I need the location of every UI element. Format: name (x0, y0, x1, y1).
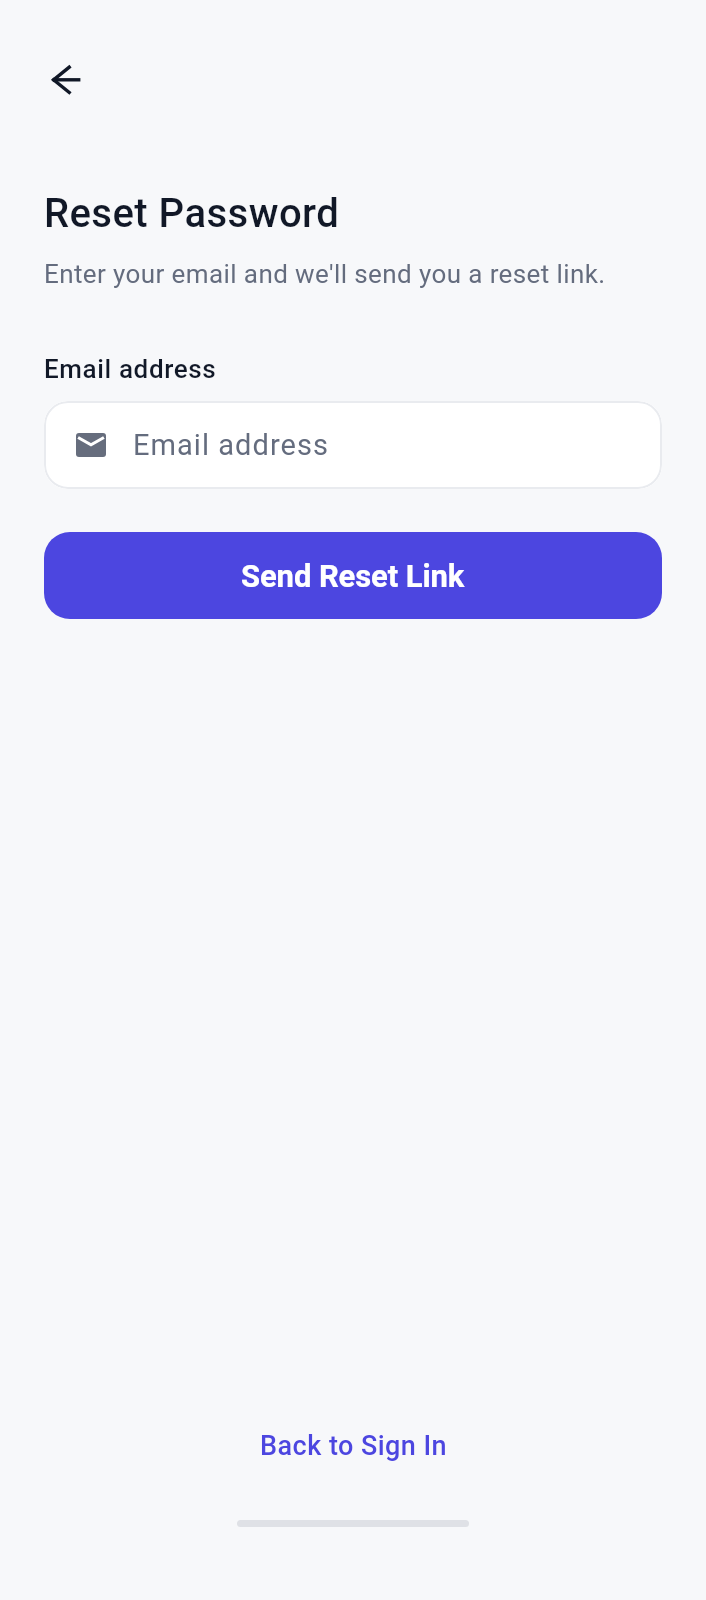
staticText: Send Reset Link (241, 558, 465, 594)
button[interactable]: Email address (44, 401, 662, 489)
staticText: Enter your email and we'll send you a re… (44, 259, 606, 289)
button[interactable]: Back (31, 45, 99, 113)
staticText: Back to Sign In (260, 1430, 447, 1462)
button[interactable]: Back to Sign In (246, 1422, 461, 1470)
staticText: Reset Password (44, 190, 340, 237)
staticText: Email address (133, 428, 329, 462)
button[interactable]: Send Reset Link (44, 532, 662, 619)
staticText: Email address (44, 354, 217, 384)
